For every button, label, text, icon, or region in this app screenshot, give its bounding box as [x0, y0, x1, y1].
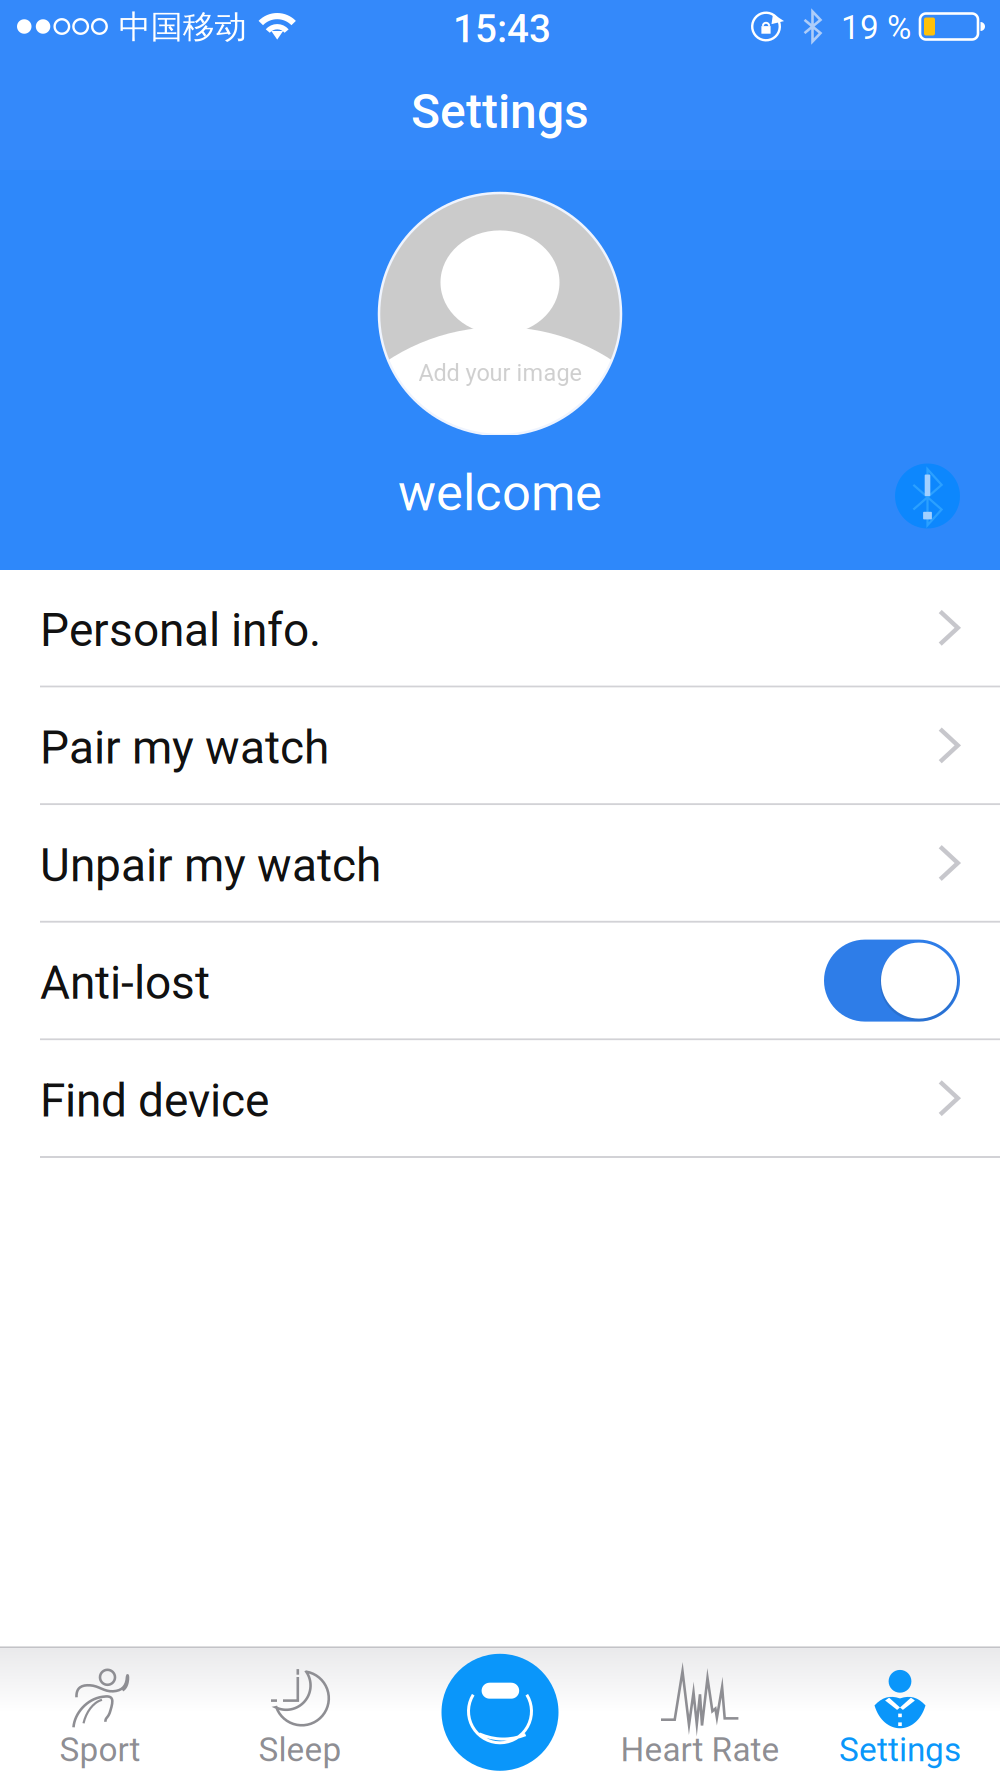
staticText: Sport	[59, 1730, 140, 1769]
button[interactable]: Bluetooth status	[895, 463, 960, 528]
button[interactable]: Settings	[800, 1647, 1000, 1778]
button[interactable]: Heart Rate	[600, 1647, 800, 1778]
staticText: 中国移动	[119, 7, 247, 47]
staticText: Unpair my watch	[40, 838, 381, 892]
staticText: Settings	[411, 83, 589, 140]
staticText: Personal info.	[40, 603, 321, 657]
staticText: Anti-lost	[40, 956, 210, 1010]
button[interactable]: Sleep	[200, 1647, 400, 1778]
staticText: Heart Rate	[620, 1730, 779, 1769]
staticText: Sleep	[258, 1730, 341, 1769]
button[interactable]: Sport	[0, 1647, 200, 1778]
staticText: welcome	[398, 463, 602, 523]
button[interactable]: Anti-lost	[0, 923, 1000, 1040]
staticText: Pair my watch	[40, 721, 329, 775]
button[interactable]: Personal info.	[0, 570, 1000, 688]
staticText: 15:43	[453, 6, 551, 52]
button[interactable]: Find device	[0, 1040, 1000, 1158]
button[interactable]: Watch	[400, 1648, 600, 1778]
staticText: Settings	[839, 1730, 961, 1769]
staticText: Add your image	[418, 359, 581, 387]
button[interactable]: Unpair my watch	[0, 805, 1000, 923]
staticText: Find device	[40, 1074, 269, 1128]
staticText: 19 %	[841, 8, 911, 47]
button[interactable]: Pair my watch	[0, 688, 1000, 805]
